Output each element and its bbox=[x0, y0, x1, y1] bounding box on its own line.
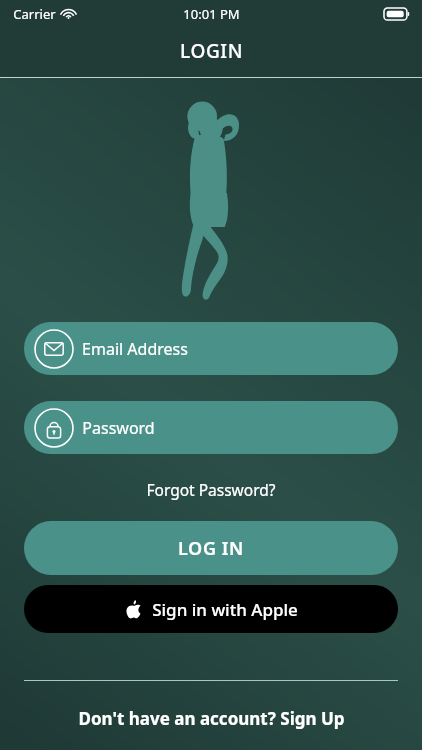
staticText: Password bbox=[82, 417, 155, 439]
staticText: 10:01 PM bbox=[183, 5, 240, 23]
button[interactable]: Don't have an account? Sign Up bbox=[68, 703, 355, 734]
staticText: Don't have an account? Sign Up bbox=[78, 707, 345, 730]
button[interactable]: Email Address bbox=[24, 322, 398, 375]
button[interactable]: LOG IN bbox=[24, 521, 398, 575]
staticText: Email Address bbox=[82, 338, 188, 360]
staticText: Sign in with Apple bbox=[152, 598, 298, 621]
button[interactable]: Forgot Password? bbox=[138, 476, 284, 503]
staticText: LOG IN bbox=[178, 536, 244, 561]
button[interactable]: Sign in with Apple bbox=[24, 585, 398, 633]
staticText: Forgot Password? bbox=[146, 479, 276, 500]
button[interactable]: Password bbox=[24, 401, 398, 454]
staticText: LOGIN bbox=[180, 38, 243, 64]
staticText: Carrier bbox=[13, 5, 56, 23]
